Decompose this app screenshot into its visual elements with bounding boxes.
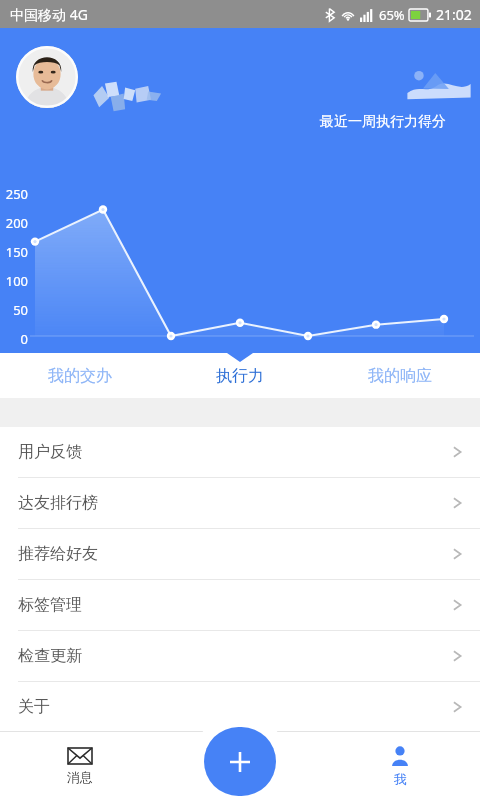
button[interactable]: 用户反馈	[0, 427, 480, 477]
staticText: 250	[0, 185, 28, 203]
staticText: 100	[0, 272, 28, 290]
staticText: 4/25	[286, 352, 330, 370]
staticText: 中国移动 4G	[10, 5, 88, 24]
staticText: 4/26	[354, 352, 398, 370]
staticText: 我的响应	[368, 366, 432, 386]
staticText: 4/27	[422, 352, 466, 370]
staticText: 标签管理	[18, 595, 82, 615]
button[interactable]: 关于	[0, 682, 480, 732]
button[interactable]: Add	[204, 727, 276, 796]
button[interactable]: 执行力	[160, 353, 320, 398]
staticText: 消息	[67, 769, 93, 785]
button[interactable]: 消息	[0, 731, 160, 800]
button[interactable]: Profile avatar	[16, 46, 78, 108]
staticText: 4/24	[218, 352, 262, 370]
staticText: 我	[394, 771, 407, 787]
staticText: 达友排行榜	[18, 493, 98, 513]
button[interactable]: 达友排行榜	[0, 478, 480, 528]
staticText: 200	[0, 214, 28, 232]
staticText: 4/21	[13, 352, 57, 370]
staticText: 4/23	[149, 352, 193, 370]
button[interactable]: 标签管理	[0, 580, 480, 630]
button[interactable]: 推荐给好友	[0, 529, 480, 579]
staticText: 执行力	[216, 366, 264, 386]
staticText: 用户反馈	[18, 442, 82, 462]
staticText: 50	[0, 301, 28, 319]
staticText: 检查更新	[18, 646, 82, 666]
staticText: 我的交办	[48, 366, 112, 386]
staticText: 65%	[379, 6, 405, 24]
staticText: 21:02	[436, 5, 472, 24]
button[interactable]: 检查更新	[0, 631, 480, 681]
staticText: 4/22	[81, 352, 125, 370]
staticText: 0	[0, 330, 28, 348]
button[interactable]: 我的响应	[320, 353, 480, 398]
button[interactable]: 我	[320, 731, 480, 800]
staticText: 150	[0, 243, 28, 261]
staticText: 关于	[18, 697, 50, 717]
button[interactable]: 我的交办	[0, 353, 160, 398]
staticText: 推荐给好友	[18, 544, 98, 564]
staticText: 最近一周执行力得分	[320, 113, 446, 131]
